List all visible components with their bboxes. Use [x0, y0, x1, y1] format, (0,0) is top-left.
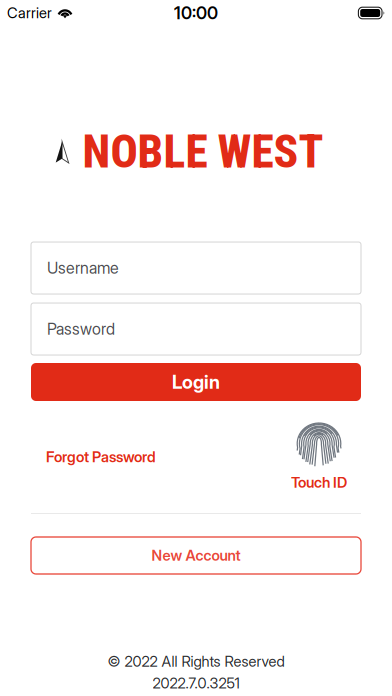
- button[interactable]: New Account: [31, 537, 361, 574]
- staticText: Login: [172, 371, 220, 393]
- staticText: Username: [47, 258, 119, 278]
- staticText: Touch ID: [291, 474, 347, 491]
- staticText: New Account: [151, 547, 240, 564]
- button[interactable]: Password: [31, 303, 361, 355]
- button[interactable]: Forgot Password: [31, 436, 171, 478]
- button[interactable]: Username: [31, 242, 361, 294]
- button[interactable]: Login: [31, 363, 361, 401]
- staticText: Forgot Password: [46, 448, 156, 466]
- staticText: 10:00: [174, 2, 218, 23]
- staticText: Carrier: [7, 4, 52, 22]
- staticText: NOBLE WEST: [82, 125, 323, 178]
- staticText: 2022.7.0.3251: [152, 674, 239, 692]
- staticText: Password: [47, 319, 115, 339]
- staticText: © 2022 All Rights Reserved: [107, 652, 284, 670]
- button[interactable]: Touch ID: [281, 423, 361, 491]
